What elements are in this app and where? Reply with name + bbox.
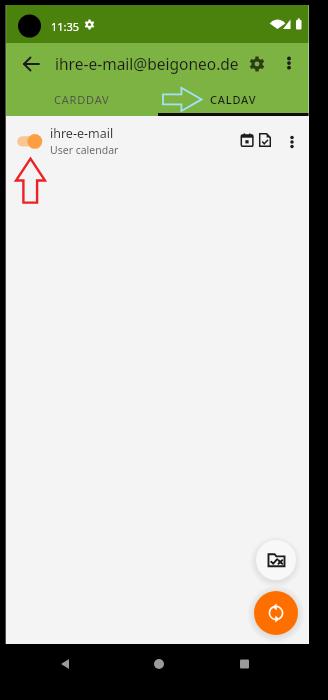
staticText: CARDDAV: [54, 92, 110, 107]
button[interactable]: CALDAV: [157, 86, 309, 113]
button[interactable]: Enable account: [6, 116, 309, 162]
button[interactable]: Calendar: [232, 125, 262, 155]
staticText: ihre-e-mail@beigoneo.de: [55, 53, 239, 74]
staticText: 11:35: [51, 19, 80, 34]
staticText: CALDAV: [210, 92, 257, 107]
staticText: ihre-e-mail: [50, 125, 114, 142]
button[interactable]: Tasks: [250, 125, 280, 155]
button[interactable]: Enable account: [11, 125, 41, 153]
button[interactable]: More options: [271, 46, 307, 82]
button[interactable]: CARDDAV: [6, 86, 157, 113]
staticText: User calendar: [50, 143, 119, 157]
button[interactable]: Back: [14, 46, 50, 82]
button[interactable]: Settings: [239, 46, 275, 82]
button[interactable]: Synchronize: [254, 591, 298, 635]
button[interactable]: More options: [277, 127, 307, 157]
button[interactable]: Select all or none: [256, 540, 296, 580]
